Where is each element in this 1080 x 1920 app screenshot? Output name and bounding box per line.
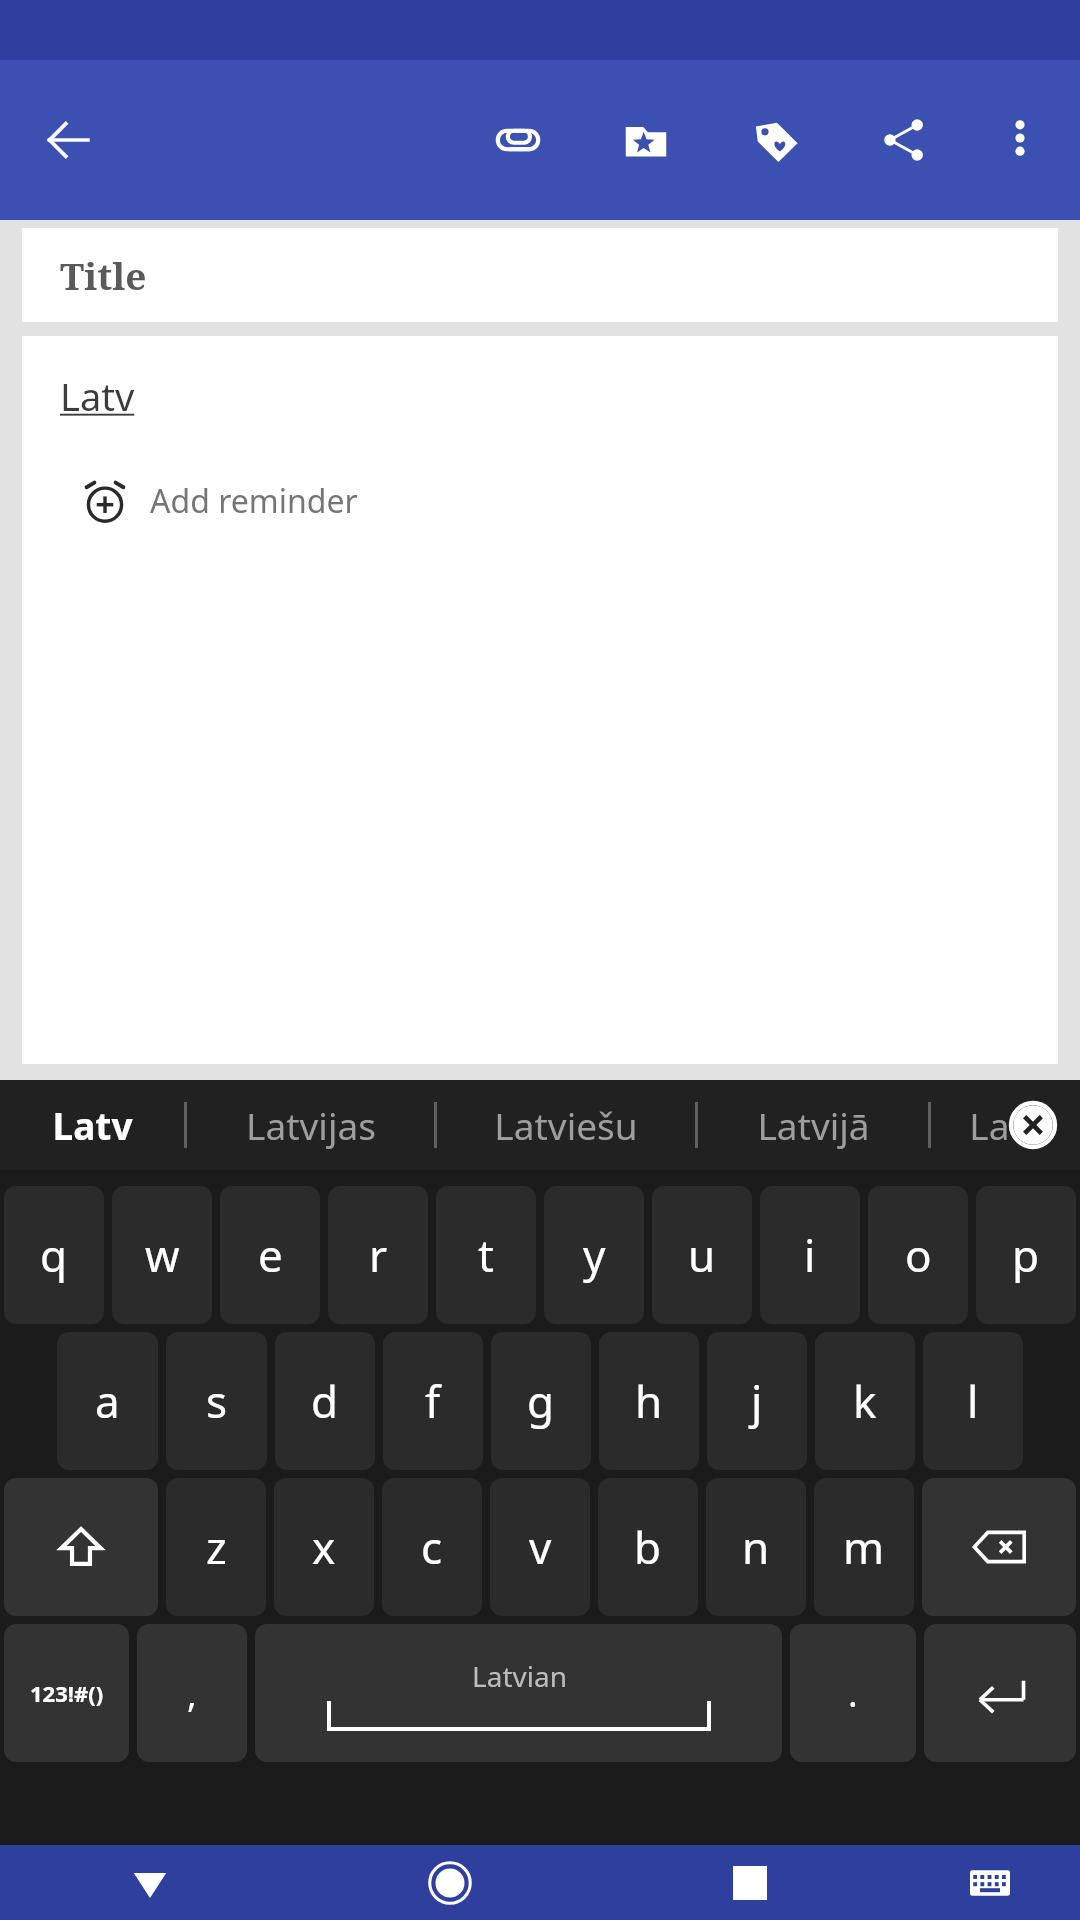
staticText: Latviešu [494, 1100, 638, 1150]
staticText: d [311, 1371, 339, 1431]
button[interactable]: Latv [931, 1100, 1080, 1150]
button[interactable]: g [491, 1332, 591, 1470]
button[interactable]: j [707, 1332, 807, 1470]
button[interactable]: t [436, 1186, 536, 1324]
staticText: k [853, 1371, 877, 1431]
staticText: p [1012, 1225, 1040, 1285]
button[interactable]: k [815, 1332, 915, 1470]
staticText: n [742, 1517, 770, 1577]
button[interactable]: o [868, 1186, 968, 1324]
button[interactable]: a [57, 1332, 158, 1470]
button[interactable]: 123!#() [4, 1624, 129, 1762]
staticText: s [206, 1371, 228, 1431]
button[interactable]: Home [300, 1845, 600, 1920]
button[interactable]: Back [28, 100, 108, 180]
button[interactable]: Latvijas [187, 1100, 434, 1150]
staticText: Latv [60, 370, 135, 422]
button[interactable]: d [275, 1332, 375, 1470]
staticText: , [187, 1669, 197, 1718]
button[interactable]: Switch keyboard [900, 1845, 1080, 1920]
button[interactable]: b [598, 1478, 698, 1616]
staticText: Latv [969, 1100, 1042, 1150]
staticText: i [804, 1225, 816, 1285]
button[interactable]: h [599, 1332, 699, 1470]
staticText: 123!#() [30, 1678, 104, 1708]
button[interactable]: Recents [600, 1845, 900, 1920]
button[interactable]: y [544, 1186, 644, 1324]
button[interactable]: Labels [736, 100, 816, 180]
button[interactable]: w [112, 1186, 212, 1324]
button[interactable]: Latv [0, 1100, 184, 1150]
button[interactable]: s [166, 1332, 267, 1470]
staticText: b [634, 1517, 662, 1577]
button[interactable]: v [490, 1478, 590, 1616]
button[interactable]: Key [4, 1478, 158, 1616]
button[interactable]: l [923, 1332, 1023, 1470]
button[interactable]: Space, Latvian [255, 1624, 782, 1762]
staticText: x [312, 1517, 336, 1577]
staticText: m [843, 1517, 885, 1577]
staticText: o [905, 1225, 932, 1285]
staticText: Latvian [472, 1657, 567, 1695]
button[interactable]: x [274, 1478, 374, 1616]
staticText: Latvijā [757, 1100, 870, 1150]
staticText: Title [60, 250, 147, 300]
button[interactable]: Hide keyboard [0, 1845, 300, 1920]
button[interactable]: e [220, 1186, 320, 1324]
staticText: c [421, 1517, 443, 1577]
button[interactable]: Latvijā [698, 1100, 928, 1150]
button[interactable]: n [706, 1478, 806, 1616]
staticText: e [258, 1225, 283, 1285]
staticText: u [688, 1225, 716, 1285]
button[interactable]: c [382, 1478, 482, 1616]
staticText: y [583, 1225, 606, 1285]
button[interactable]: More options [982, 100, 1058, 176]
button[interactable]: q [4, 1186, 104, 1324]
staticText: l [967, 1371, 979, 1431]
button[interactable]: . [790, 1624, 916, 1762]
button[interactable]: u [652, 1186, 752, 1324]
staticText: w [145, 1225, 180, 1285]
button[interactable]: i [760, 1186, 860, 1324]
staticText: z [206, 1517, 227, 1577]
staticText: j [751, 1371, 763, 1431]
button[interactable]: z [166, 1478, 266, 1616]
button[interactable]: Latviešu [437, 1100, 695, 1150]
staticText: r [369, 1225, 388, 1285]
staticText: v [529, 1517, 552, 1577]
button[interactable]: f [383, 1332, 483, 1470]
staticText: h [635, 1371, 663, 1431]
staticText: q [40, 1225, 68, 1285]
staticText: Latvijas [246, 1100, 376, 1150]
button[interactable]: Close suggestions [1004, 1096, 1062, 1154]
button[interactable]: Attach [478, 100, 558, 180]
staticText: . [848, 1669, 858, 1718]
staticText: t [478, 1225, 494, 1285]
button[interactable]: Title [22, 228, 1058, 322]
staticText: g [527, 1371, 555, 1431]
button[interactable]: , [137, 1624, 247, 1762]
button[interactable]: Latv [22, 336, 1058, 1064]
button[interactable]: Add to folder [606, 100, 686, 180]
button[interactable]: m [814, 1478, 914, 1616]
button[interactable]: Add reminder [82, 478, 358, 524]
button[interactable]: Share [864, 100, 944, 180]
staticText: a [95, 1371, 120, 1431]
button[interactable]: Key [924, 1624, 1076, 1762]
button[interactable]: Key [922, 1478, 1076, 1616]
staticText: Latv [52, 1100, 133, 1150]
button[interactable]: p [976, 1186, 1076, 1324]
staticText: Add reminder [150, 479, 358, 523]
button[interactable]: r [328, 1186, 428, 1324]
staticText: f [425, 1371, 441, 1431]
